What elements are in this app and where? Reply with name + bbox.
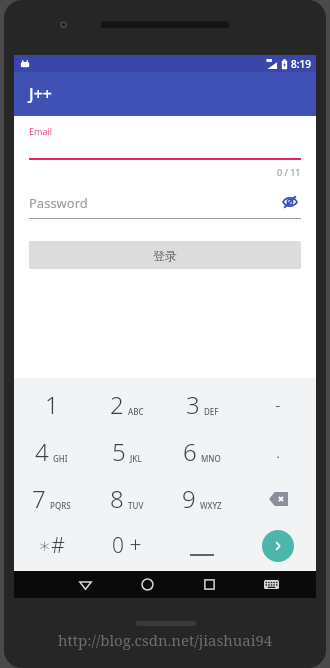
staticText: ∗#: [38, 531, 65, 560]
button[interactable]: Email: [29, 125, 301, 160]
staticText: -: [275, 393, 281, 416]
button[interactable]: 8: [89, 475, 164, 522]
button[interactable]: Backspace: [240, 475, 316, 522]
staticText: 8: [110, 482, 124, 515]
staticText: 登录: [153, 248, 177, 263]
button[interactable]: 登录: [29, 241, 301, 269]
staticText: 5: [112, 435, 126, 468]
staticText: 4: [35, 435, 49, 468]
button[interactable]: 5: [89, 428, 164, 475]
staticText: TUV: [128, 500, 144, 511]
staticText: 9: [182, 482, 196, 515]
staticText: GHI: [53, 453, 68, 464]
button[interactable]: Home: [116, 571, 178, 598]
staticText: 6: [183, 435, 197, 468]
button[interactable]: Toggle password visibility: [279, 191, 301, 213]
staticText: 2: [110, 388, 124, 421]
button[interactable]: Recents: [178, 571, 240, 598]
button[interactable]: 0 +: [89, 522, 164, 569]
staticText: 7: [32, 482, 46, 515]
staticText: JKL: [130, 453, 142, 464]
staticText: DEF: [204, 406, 219, 417]
staticText: .: [276, 440, 281, 463]
staticText: PQRS: [50, 500, 71, 511]
staticText: 0 / 11: [277, 166, 301, 178]
staticText: WXYZ: [200, 500, 222, 511]
button[interactable]: 4: [14, 428, 89, 475]
button[interactable]: Switch keyboard: [240, 571, 302, 598]
button[interactable]: Space: [164, 522, 240, 569]
staticText: J++: [29, 83, 52, 105]
button[interactable]: -: [240, 381, 316, 428]
button[interactable]: 7: [14, 475, 89, 522]
staticText: 0 +: [112, 531, 142, 560]
button[interactable]: 6: [164, 428, 240, 475]
staticText: Email: [29, 125, 53, 137]
button[interactable]: 1: [14, 381, 89, 428]
staticText: 8:19: [291, 57, 311, 71]
button[interactable]: Password: [29, 191, 301, 219]
button[interactable]: 2: [89, 381, 164, 428]
button[interactable]: 3: [164, 381, 240, 428]
button[interactable]: 9: [164, 475, 240, 522]
staticText: ABC: [128, 406, 144, 417]
staticText: http://blog.csdn.net/jiashuai94: [58, 630, 273, 650]
button[interactable]: ∗#: [14, 522, 89, 569]
staticText: MNO: [201, 453, 221, 464]
staticText: 3: [186, 388, 200, 421]
button[interactable]: Back: [54, 571, 116, 598]
staticText: 1: [45, 388, 59, 421]
button[interactable]: Enter: [240, 522, 316, 569]
staticText: Password: [29, 194, 88, 212]
